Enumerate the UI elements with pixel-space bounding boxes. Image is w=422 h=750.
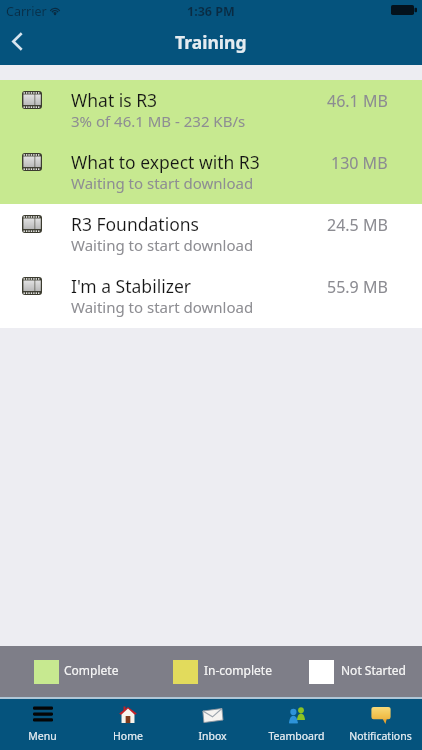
staticText: 130 MB xyxy=(331,152,388,174)
button[interactable]: R3 Foundations xyxy=(0,204,422,266)
button[interactable]: What is R3 xyxy=(0,80,422,142)
staticText: What to expect with R3 xyxy=(71,150,260,174)
button[interactable]: Notifications xyxy=(338,699,422,750)
staticText: 46.1 MB xyxy=(327,90,388,112)
button[interactable]: Inbox xyxy=(170,699,254,750)
staticText: Home xyxy=(113,729,143,743)
staticText: Inbox xyxy=(198,729,227,743)
staticText: Carrier xyxy=(6,3,47,20)
staticText: Waiting to start download xyxy=(71,173,254,193)
staticText: Teamboard xyxy=(268,729,325,743)
staticText: 24.5 MB xyxy=(327,214,388,236)
button[interactable]: Menu xyxy=(0,699,85,750)
button[interactable]: Teamboard xyxy=(254,699,338,750)
staticText: Menu xyxy=(28,729,57,743)
staticText: Notifications xyxy=(349,729,412,743)
staticText: Waiting to start download xyxy=(71,297,254,317)
button[interactable]: Back xyxy=(0,20,45,65)
staticText: In-complete xyxy=(204,662,272,678)
staticText: Waiting to start download xyxy=(71,235,254,255)
button[interactable]: What to expect with R3 xyxy=(0,142,422,204)
staticText: 1:36 PM xyxy=(187,3,235,20)
staticText: I'm a Stabilizer xyxy=(71,274,191,298)
staticText: 3% of 46.1 MB - 232 KB/s xyxy=(71,111,246,131)
staticText: What is R3 xyxy=(71,88,158,112)
button[interactable]: Home xyxy=(85,699,170,750)
staticText: Not Started xyxy=(341,662,406,678)
staticText: 55.9 MB xyxy=(327,276,388,298)
staticText: R3 Foundations xyxy=(71,212,199,236)
button[interactable]: I'm a Stabilizer xyxy=(0,266,422,328)
staticText: Complete xyxy=(64,662,119,678)
staticText: Training xyxy=(175,30,247,54)
